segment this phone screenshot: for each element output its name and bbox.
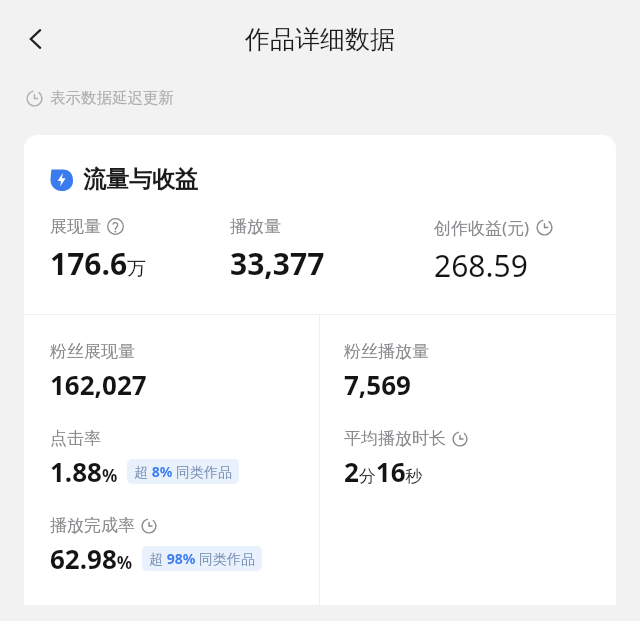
staticText: 2分16秒	[344, 454, 423, 489]
staticText: 表示数据延迟更新	[50, 88, 174, 108]
staticText: 流量与收益	[83, 165, 198, 194]
staticText: 162,027	[50, 367, 147, 402]
staticText: 播放量	[230, 216, 281, 237]
staticText: 展现量	[50, 216, 101, 237]
staticText: 作品详细数据	[245, 24, 395, 55]
staticText: 1.88%	[50, 454, 118, 489]
button[interactable]: 粉丝展现量	[50, 341, 147, 402]
staticText: 176.6万	[50, 243, 147, 284]
button[interactable]: 点击率	[50, 428, 239, 489]
staticText: 超 8% 同类作品	[134, 462, 232, 481]
staticText: 超 98% 同类作品	[149, 549, 255, 568]
staticText: 粉丝展现量	[50, 341, 135, 362]
button[interactable]: 播放完成率	[50, 515, 262, 576]
staticText: 268.59	[434, 245, 528, 286]
staticText: 7,569	[344, 367, 411, 402]
button[interactable]: 展现量	[50, 216, 224, 284]
staticText: 33,377	[230, 243, 325, 284]
staticText: 62.98%	[50, 541, 133, 576]
staticText: 平均播放时长	[344, 428, 446, 449]
button[interactable]: Back	[8, 11, 64, 67]
button[interactable]: 创作收益(元)	[434, 216, 616, 286]
staticText: 播放完成率	[50, 515, 135, 536]
button[interactable]: 流量与收益	[50, 165, 198, 194]
button[interactable]: 播放量	[230, 216, 424, 284]
button[interactable]: 平均播放时长	[344, 428, 468, 489]
staticText: 创作收益(元)	[434, 216, 530, 239]
button[interactable]: 粉丝播放量	[344, 341, 429, 402]
staticText: 点击率	[50, 428, 101, 449]
staticText: 粉丝播放量	[344, 341, 429, 362]
